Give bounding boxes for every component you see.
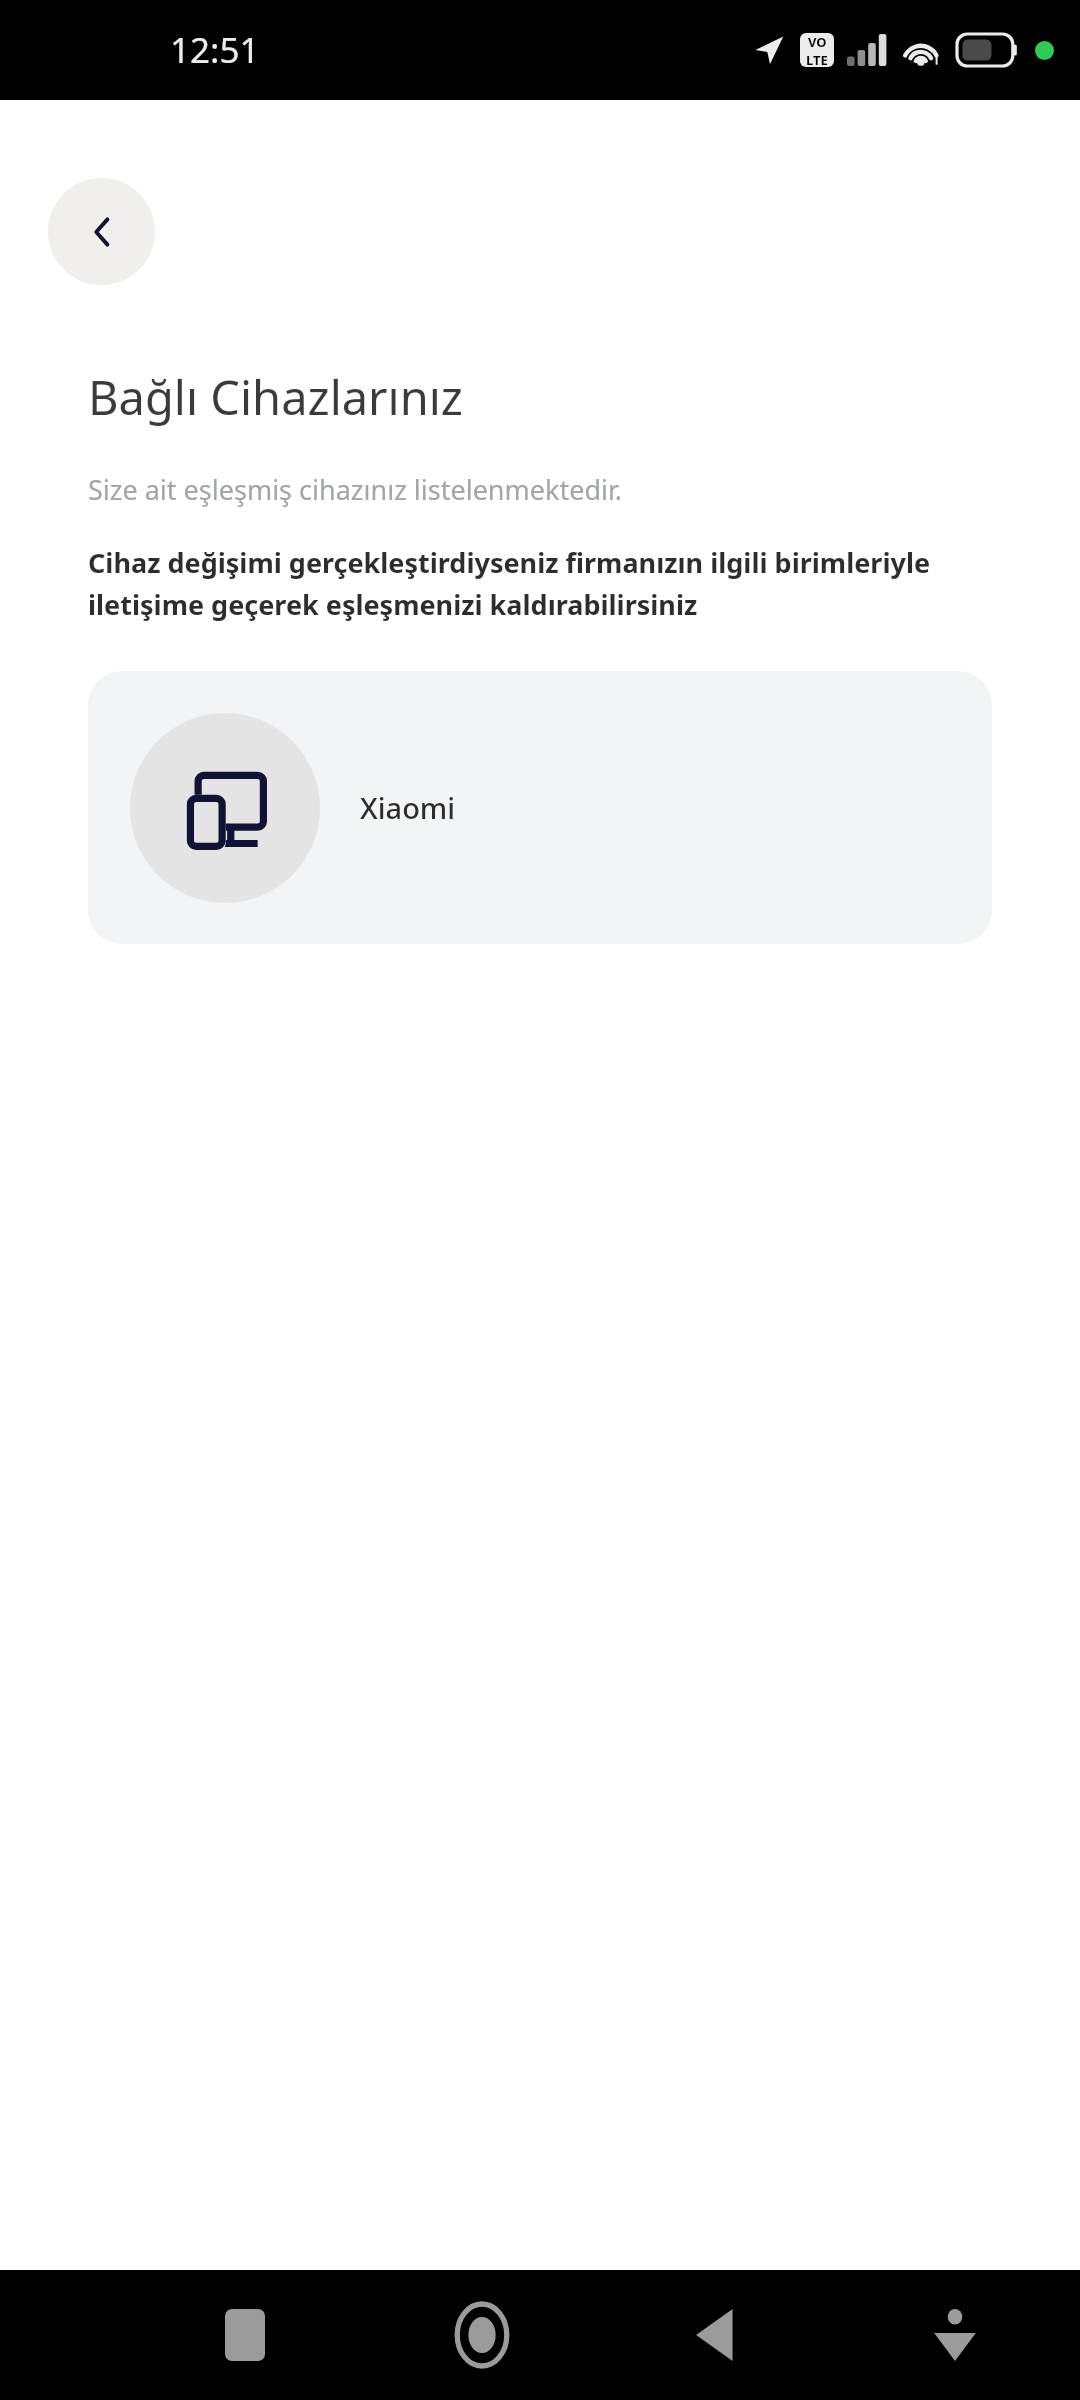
staticText: VO xyxy=(808,33,827,51)
button[interactable]: Son uygulamalar xyxy=(200,2290,290,2380)
button[interactable]: Xiaomi xyxy=(88,671,992,944)
button[interactable]: Geri xyxy=(48,178,155,285)
button[interactable]: Ana ekran xyxy=(437,2290,527,2380)
staticText: Xiaomi xyxy=(360,788,456,827)
button[interactable]: Geri xyxy=(673,2290,763,2380)
staticText: Size ait eşleşmiş cihazınız listelenmekt… xyxy=(88,471,623,508)
staticText: Bağlı Cihazlarınız xyxy=(88,365,463,429)
staticText: 12:51 xyxy=(170,26,260,74)
staticText: LTE xyxy=(806,51,828,67)
button[interactable]: Klavyeyi gizle xyxy=(910,2290,1000,2380)
staticText: Cihaz değişimi gerçekleştirdiyseniz firm… xyxy=(88,544,988,623)
